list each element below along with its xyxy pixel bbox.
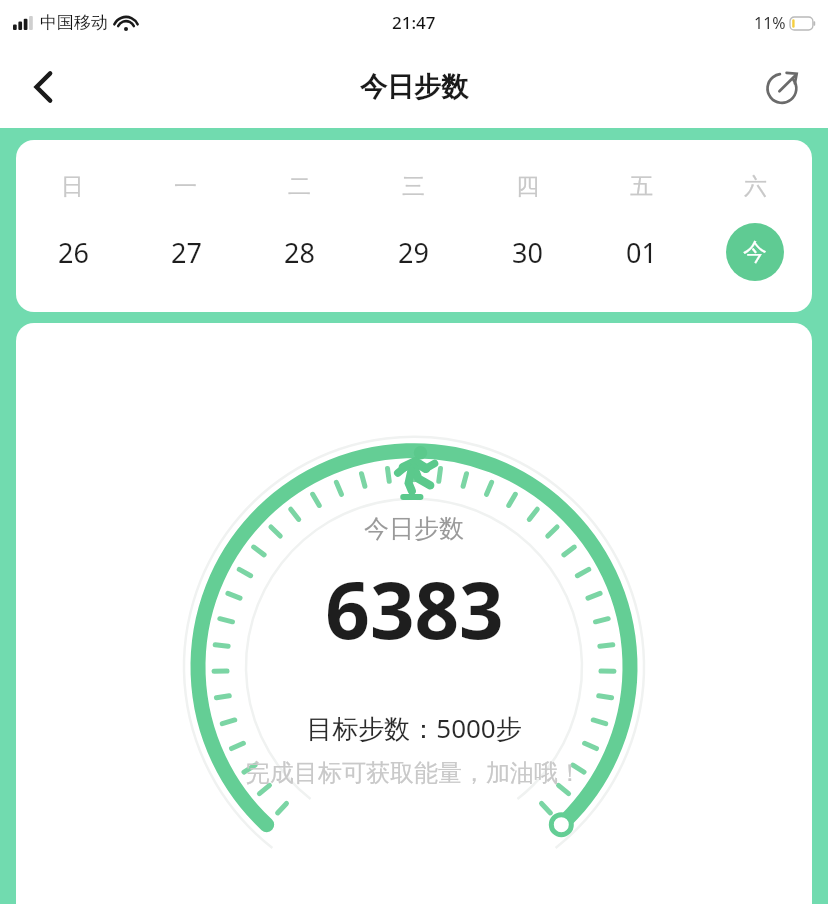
staticText: 今日步数 [364, 513, 464, 544]
button[interactable]: Share [754, 58, 812, 116]
staticText: 26 [58, 234, 89, 271]
staticText: 六 [744, 172, 767, 201]
staticText: 四 [516, 172, 539, 201]
staticText: 日 [61, 172, 84, 201]
button[interactable]: 五 [584, 172, 698, 281]
button[interactable]: 六 [698, 172, 812, 281]
staticText: 中国移动 [40, 12, 108, 33]
button[interactable]: 二 [242, 172, 356, 281]
staticText: 01 [626, 234, 657, 271]
staticText: 今 [743, 237, 767, 267]
staticText: 五 [630, 172, 653, 201]
staticText: 完成目标可获取能量，加油哦！ [246, 758, 582, 788]
staticText: 28 [284, 234, 315, 271]
staticText: 一 [174, 172, 197, 201]
staticText: 6383 [325, 556, 504, 662]
staticText: 21:47 [392, 11, 436, 34]
staticText: 30 [512, 234, 543, 271]
button[interactable]: 日 [16, 172, 129, 281]
button[interactable]: 三 [356, 172, 470, 281]
staticText: 27 [171, 234, 202, 271]
staticText: 二 [288, 172, 311, 201]
button[interactable]: Back [16, 59, 72, 115]
staticText: 目标步数：5000步 [306, 710, 522, 746]
staticText: 三 [402, 172, 425, 201]
button[interactable]: 一 [129, 172, 242, 281]
button[interactable]: 四 [470, 172, 584, 281]
staticText: 今日步数 [360, 70, 468, 104]
staticText: 11% [754, 12, 786, 34]
staticText: 29 [398, 234, 429, 271]
